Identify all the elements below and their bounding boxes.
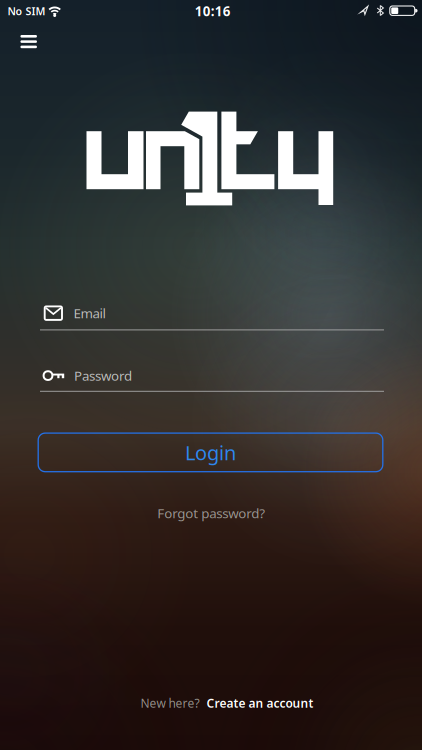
staticText: Create an account: [206, 695, 313, 711]
button[interactable]: Login: [38, 433, 383, 472]
button[interactable]: Menu: [14, 29, 43, 54]
staticText: Login: [185, 439, 236, 466]
button[interactable]: New here?: [136, 691, 317, 715]
button[interactable]: Forgot password?: [153, 500, 269, 526]
staticText: Forgot password?: [157, 504, 265, 522]
staticText: Email: [73, 304, 105, 322]
staticText: New here?: [140, 695, 199, 711]
staticText: 10:16: [195, 2, 231, 20]
staticText: No SIM: [7, 4, 45, 18]
staticText: Password: [74, 367, 132, 384]
